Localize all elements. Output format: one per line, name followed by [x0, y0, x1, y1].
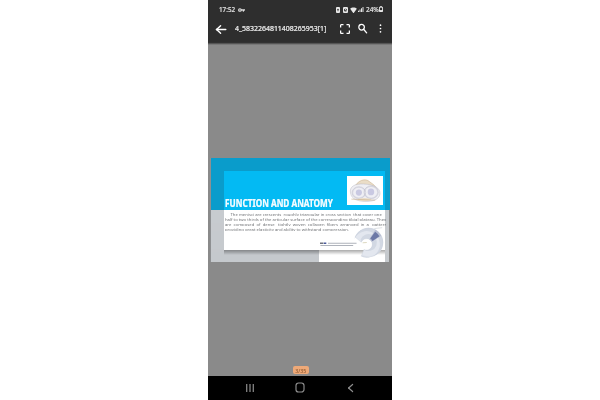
button[interactable]: Fullscreen [336, 20, 353, 37]
staticText: are composed of dense, tightly woven col… [225, 221, 386, 226]
button[interactable]: More options [372, 20, 389, 37]
staticText: FUNCTION AND ANATOMY [225, 196, 333, 210]
button[interactable]: Back [211, 19, 231, 39]
button[interactable]: Back [340, 377, 361, 398]
button[interactable]: Recent apps [239, 377, 260, 398]
staticText: 4_5832264811408265953[1] [235, 24, 327, 33]
staticText: 17:52 [219, 5, 235, 15]
staticText: 24% [366, 5, 379, 15]
staticText: providing great elasticity and ability t… [225, 226, 350, 231]
staticText: half to two thirds of the articular surf… [225, 216, 386, 221]
button[interactable]: Search [354, 20, 371, 37]
button[interactable]: Home [289, 377, 310, 398]
button[interactable]: 3/35 [293, 366, 309, 374]
staticText: The menisci are crescents, roughly trian… [225, 211, 382, 216]
staticText: 3/35 [295, 367, 307, 374]
